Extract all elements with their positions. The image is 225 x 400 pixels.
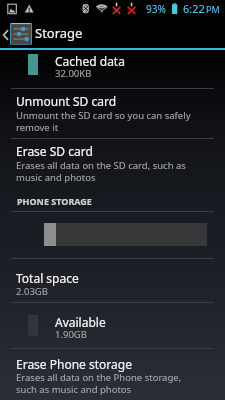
staticText: 6:22 — [183, 1, 205, 16]
staticText: 32.00KB — [55, 67, 92, 80]
staticText: 93% — [146, 2, 166, 16]
button[interactable]: Navigate up — [0, 17, 34, 48]
button[interactable] — [0, 50, 225, 88]
button[interactable] — [0, 259, 225, 302]
staticText: Erases all data on the SD card, such as … — [16, 159, 186, 184]
staticText: Unmount SD card — [16, 93, 117, 109]
staticText: PM — [206, 3, 220, 15]
staticText: Storage — [35, 24, 83, 42]
staticText: 2.03GB — [16, 285, 48, 298]
staticText: Erase Phone storage — [16, 356, 132, 372]
button[interactable] — [0, 303, 225, 348]
staticText: Cached data — [55, 53, 125, 69]
staticText: 1.90GB — [55, 328, 87, 341]
button[interactable] — [0, 349, 225, 400]
staticText: Available — [55, 314, 106, 330]
button[interactable] — [0, 139, 225, 188]
staticText: Erases all data on the Phone storage, su… — [16, 371, 182, 396]
staticText: Erase SD card — [16, 143, 93, 159]
staticText: PHONE STORAGE — [17, 195, 92, 207]
staticText: Unmount the SD card so you can safely re… — [16, 109, 191, 134]
staticText: Total space — [16, 270, 79, 286]
button[interactable] — [0, 89, 225, 138]
